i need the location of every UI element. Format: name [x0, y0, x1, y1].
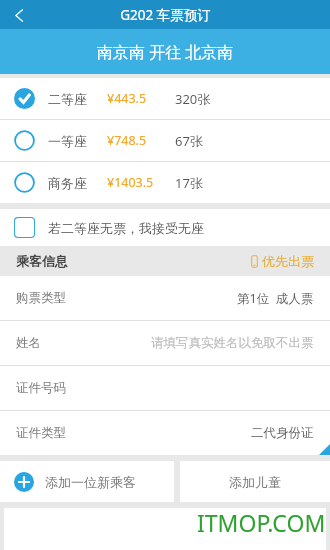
staticText: 购票类型 [16, 290, 66, 306]
staticText: 南京南 开往 北京南 [97, 41, 234, 63]
staticText: 二等座 [48, 91, 87, 107]
button[interactable]: 证件号码 [0, 366, 330, 410]
button[interactable]: 添加儿童 [180, 461, 330, 502]
staticText: 第1位 成人票 [237, 290, 314, 307]
button[interactable]: 优先出票 [250, 253, 314, 269]
staticText: 姓名 [16, 335, 41, 351]
staticText: 320张 [175, 90, 211, 108]
staticText: 证件号码 [16, 380, 66, 396]
staticText: 一等座 [48, 133, 87, 149]
button[interactable]: 二等座 [0, 78, 330, 119]
staticText: 证件类型 [16, 425, 66, 441]
button[interactable]: 商务座 [0, 162, 330, 203]
button[interactable]: 姓名 [0, 321, 330, 365]
button[interactable]: 添加一位新乘客 [0, 461, 174, 502]
staticText: 二代身份证 [251, 425, 314, 441]
button[interactable]: 一等座 [0, 120, 330, 161]
staticText: 乘客信息 [16, 253, 68, 269]
staticText: ¥748.5 [107, 132, 147, 149]
button[interactable]: 购票类型 [0, 276, 330, 320]
button[interactable]: Back [6, 2, 32, 28]
staticText: 请填写真实姓名以免取不出票 [151, 335, 314, 351]
staticText: 17张 [175, 174, 203, 192]
button[interactable]: 若二等座无票，我接受无座 [0, 209, 330, 246]
staticText: ITMOP.COM [197, 507, 326, 538]
staticText: G202 车票预订 [120, 6, 211, 24]
staticText: ¥443.5 [107, 90, 147, 107]
button[interactable]: 证件类型 [0, 411, 330, 455]
staticText: 优先出票 [262, 253, 314, 269]
staticText: ¥1403.5 [107, 174, 154, 191]
staticText: 添加儿童 [229, 474, 281, 490]
staticText: 若二等座无票，我接受无座 [48, 220, 204, 236]
staticText: 商务座 [48, 175, 87, 191]
staticText: 添加一位新乘客 [45, 474, 136, 490]
staticText: 67张 [175, 132, 203, 150]
